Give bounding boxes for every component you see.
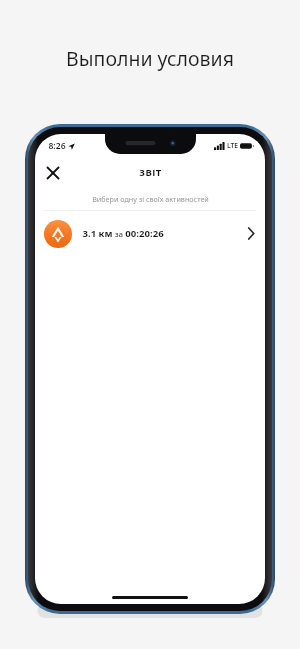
staticText: LTE xyxy=(227,141,238,150)
staticText: Вибери одну зі своїх активностей xyxy=(92,194,209,204)
staticText: 00:20:26 xyxy=(125,227,164,240)
staticText: за xyxy=(115,229,123,239)
staticText: 3.1 км xyxy=(82,227,113,240)
staticText: 8:26 xyxy=(48,140,66,152)
button[interactable]: 3.1 км xyxy=(35,211,265,256)
staticText: Выполни условия xyxy=(66,45,234,72)
button[interactable]: Close xyxy=(40,160,66,186)
staticText: ЗВІТ xyxy=(139,166,162,179)
